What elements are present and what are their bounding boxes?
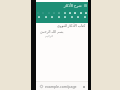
button[interactable]: Tool	[74, 12, 76, 14]
button[interactable]: Action	[64, 16, 66, 18]
staticText: example.com/page	[45, 84, 77, 89]
button[interactable]: Reload	[39, 84, 43, 88]
staticText: بسم الله الرحمن	[40, 29, 64, 34]
button[interactable]: App menu	[84, 4, 87, 7]
staticText: شرح الأذكار	[64, 3, 82, 8]
staticText: الرحيم	[45, 34, 54, 37]
button[interactable]: Action	[45, 16, 47, 18]
button[interactable]: Action	[51, 16, 53, 18]
staticText: كتاب الأذكار للنووي	[57, 23, 86, 28]
button[interactable]: Tool	[64, 12, 66, 14]
button[interactable]: Tool	[69, 12, 71, 14]
button[interactable]: Action	[58, 16, 60, 18]
button[interactable]: Tool	[80, 12, 82, 14]
button[interactable]: Action	[77, 16, 79, 18]
button[interactable]: Tool	[85, 12, 87, 14]
button[interactable]: Action	[71, 16, 73, 18]
button[interactable]: Action	[84, 16, 86, 18]
button[interactable]: More	[82, 85, 85, 88]
button[interactable]: Action	[38, 16, 40, 18]
